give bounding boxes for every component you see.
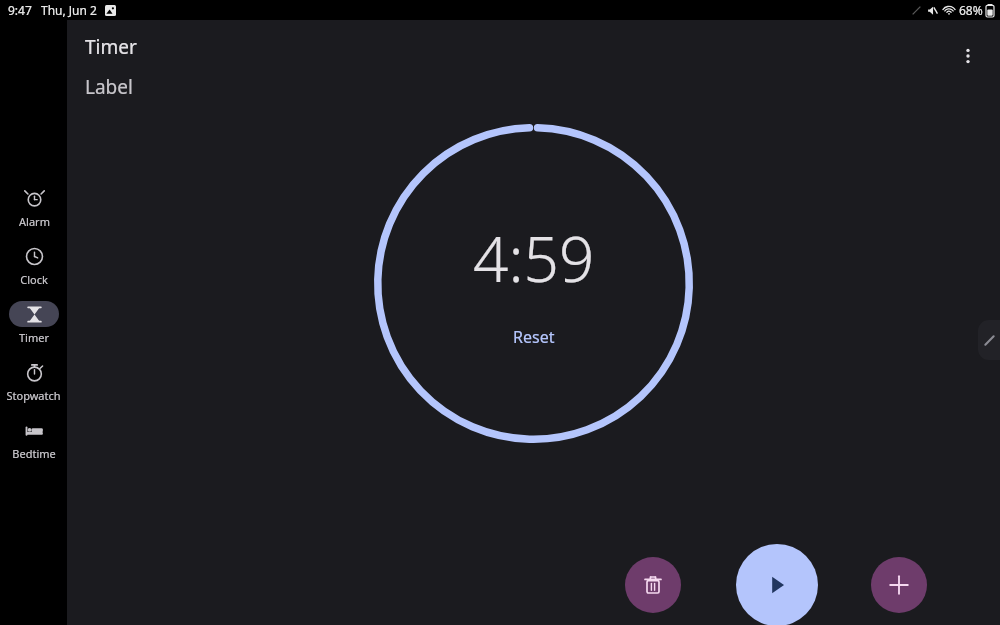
button[interactable]: Stopwatch	[4, 359, 63, 403]
button[interactable]: Reset	[501, 322, 567, 352]
button[interactable]: Start timer	[736, 544, 818, 625]
staticText: Alarm	[19, 214, 50, 229]
button[interactable]: 4:59	[473, 216, 595, 300]
staticText: 68%	[959, 2, 983, 18]
staticText: Timer	[19, 330, 49, 345]
staticText: Stopwatch	[6, 388, 61, 403]
staticText: Bedtime	[12, 446, 56, 461]
staticText: Timer	[85, 34, 137, 60]
button[interactable]: Label	[85, 74, 133, 100]
button[interactable]: Alarm	[7, 185, 61, 229]
staticText: Thu, Jun 2	[41, 2, 97, 18]
staticText: Clock	[20, 272, 48, 287]
staticText: 9:47	[8, 2, 32, 18]
button[interactable]: Delete timer	[625, 557, 681, 613]
button[interactable]: Bedtime	[7, 417, 61, 461]
button[interactable]: More options	[946, 34, 990, 78]
button[interactable]: Timer	[7, 301, 61, 345]
button[interactable]: Edit	[978, 320, 1000, 360]
button[interactable]: Add one minute	[871, 557, 927, 613]
button[interactable]: Clock	[7, 243, 61, 287]
